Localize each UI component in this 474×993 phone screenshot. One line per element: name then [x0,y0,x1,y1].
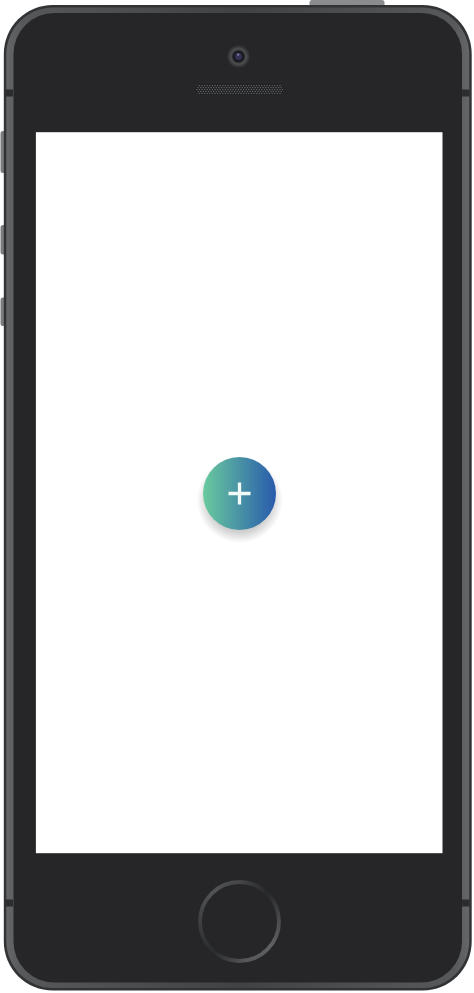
button[interactable] [203,457,276,530]
